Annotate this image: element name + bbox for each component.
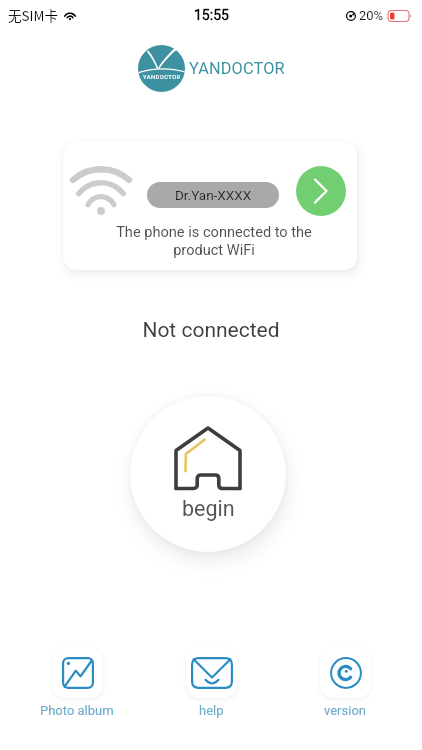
staticText: Photo album	[40, 703, 114, 718]
staticText: 无SIM卡	[8, 5, 58, 25]
button[interactable]: begin	[130, 396, 286, 552]
staticText: Dr.Yan-XXXX	[175, 187, 252, 203]
staticText: Not connected	[0, 318, 422, 343]
button[interactable]: Photo album	[27, 647, 127, 718]
staticText: YANDOCTOR	[189, 59, 285, 78]
staticText: 20%	[359, 8, 384, 23]
button[interactable]: version	[295, 647, 395, 718]
staticText: The phone is connected to the product Wi…	[116, 223, 312, 258]
staticText: 15:55	[194, 7, 229, 23]
button[interactable]: Connect	[296, 166, 346, 216]
button[interactable]: help	[161, 647, 261, 718]
button[interactable]: Dr.Yan-XXXX	[147, 182, 279, 208]
staticText: YANDOCTOR	[143, 74, 181, 81]
staticText: version	[324, 703, 366, 718]
staticText: help	[199, 703, 224, 718]
staticText: begin	[182, 496, 235, 521]
